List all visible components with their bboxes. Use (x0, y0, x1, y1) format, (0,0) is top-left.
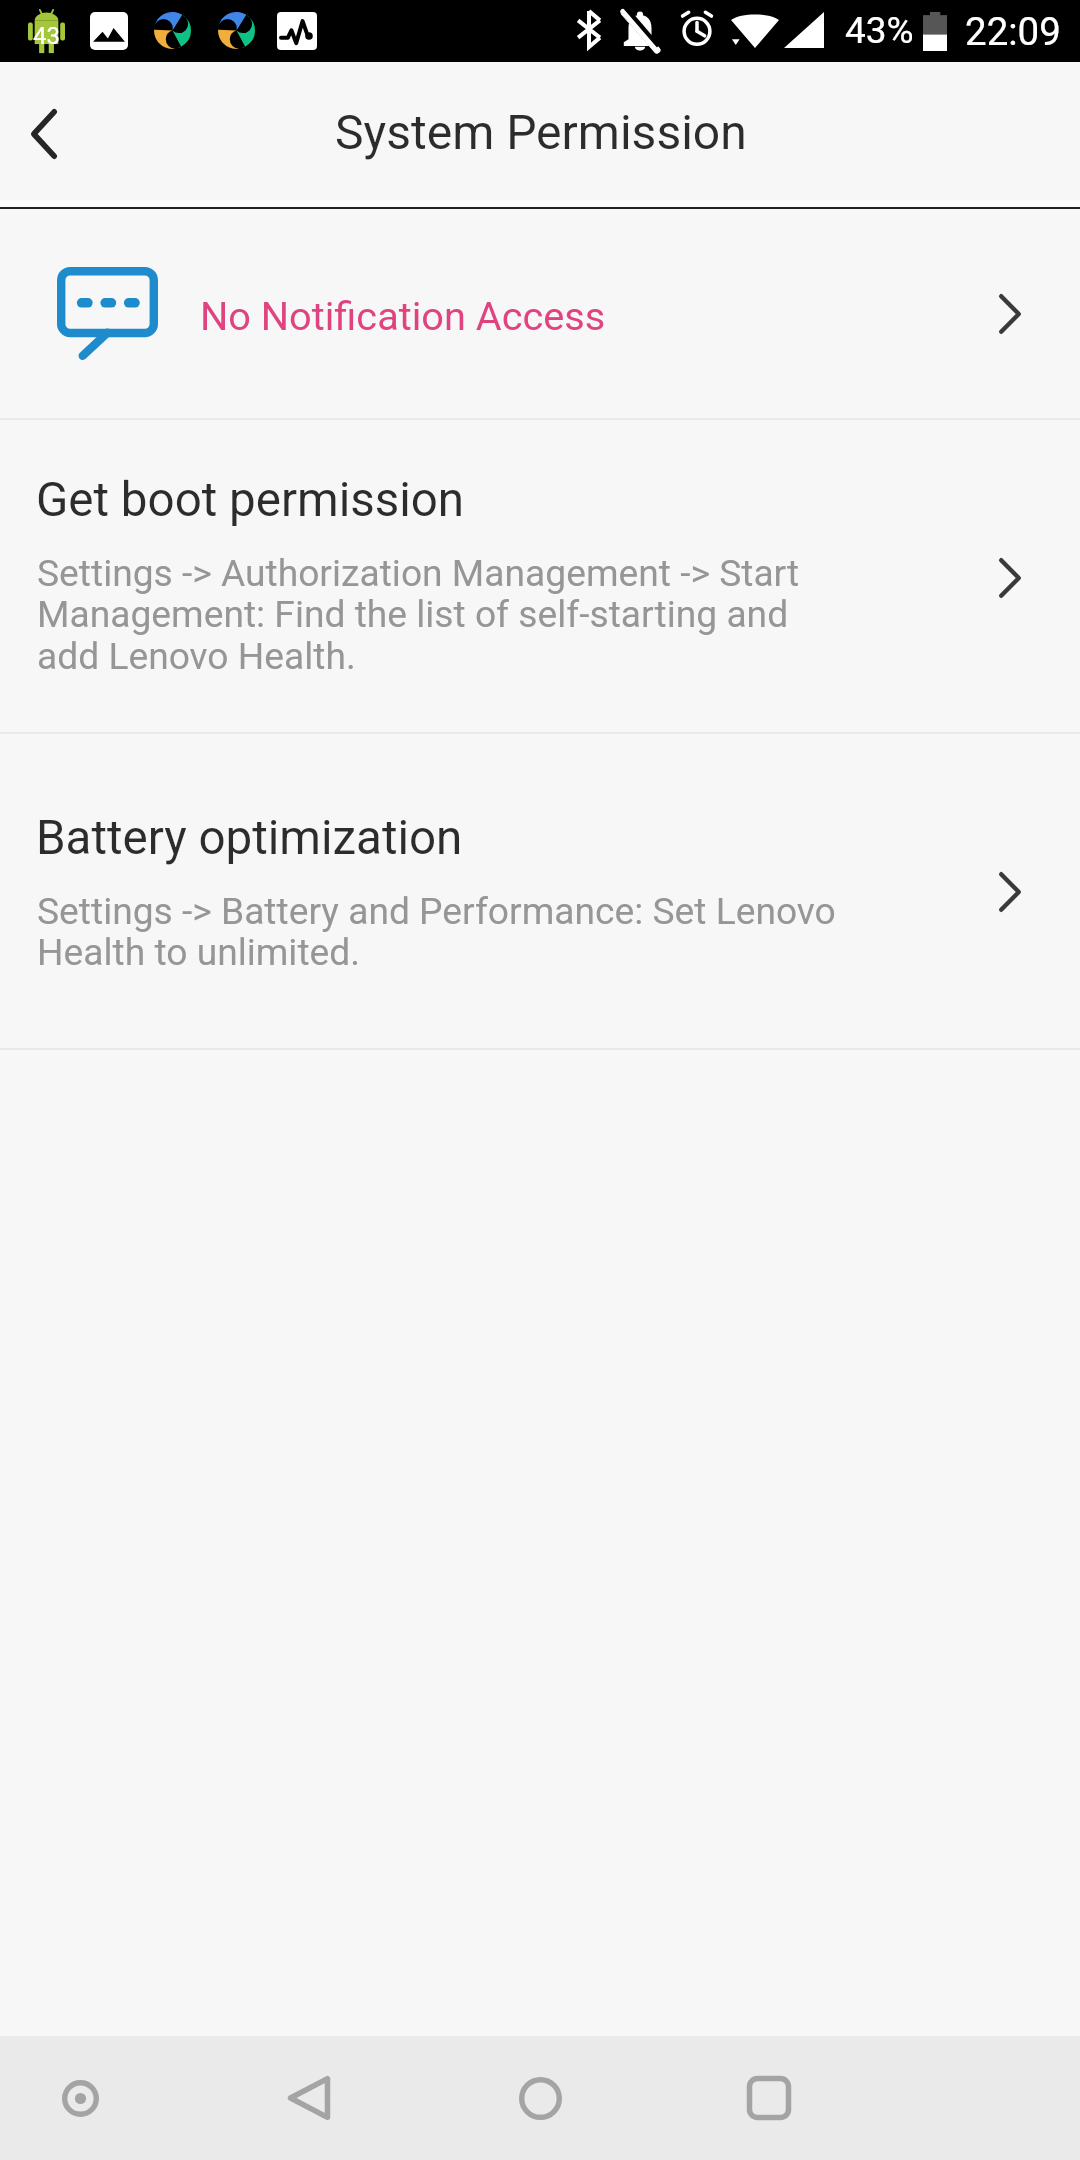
button[interactable]: Back (0, 62, 100, 208)
button[interactable]: No Notification Access (0, 209, 1080, 418)
staticText: No Notification Access (200, 293, 606, 340)
button[interactable]: Battery optimization (0, 734, 1080, 1048)
staticText: 43 (32, 22, 61, 50)
button[interactable]: Home (478, 2036, 602, 2160)
button[interactable]: Assistant (18, 2036, 142, 2160)
staticText: Settings -> Authorization Management -> … (37, 551, 843, 678)
staticText: System Permission (335, 104, 747, 160)
staticText: Get boot permission (36, 472, 465, 528)
button[interactable]: Back (247, 2036, 371, 2160)
button[interactable]: Recent apps (707, 2036, 831, 2160)
staticText: 43% (845, 9, 914, 52)
staticText: Battery optimization (36, 810, 463, 866)
staticText: 22:09 (965, 9, 1061, 54)
staticText: Settings -> Battery and Performance: Set… (37, 889, 843, 974)
button[interactable]: Get boot permission (0, 420, 1080, 732)
